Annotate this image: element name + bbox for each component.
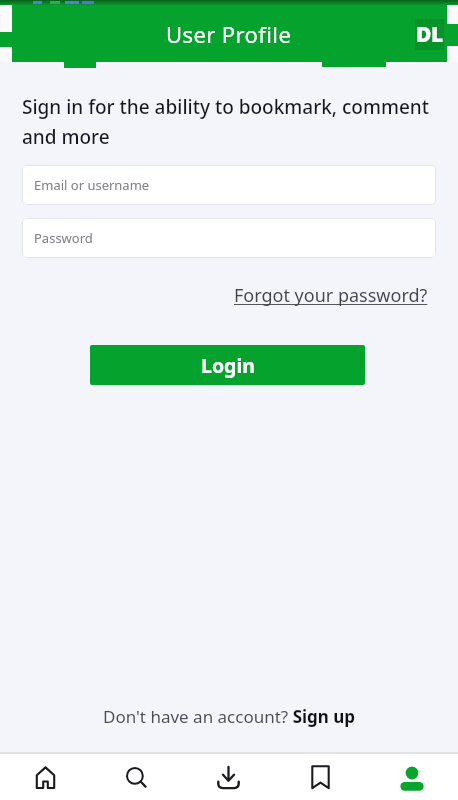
button[interactable]: Password [22, 218, 436, 258]
button[interactable] [0, 754, 91, 800]
button[interactable] [182, 754, 274, 800]
button[interactable]: DL [415, 19, 444, 50]
button[interactable]: Don't have an account? Sign up [0, 705, 458, 728]
staticText: Don't have an account? Sign up [103, 705, 356, 728]
button[interactable] [274, 754, 366, 800]
staticText: Sign in for the ability to bookmark, com… [22, 94, 430, 150]
staticText: Login [201, 352, 255, 379]
staticText: DL [416, 20, 443, 49]
button[interactable]: Email or username [22, 165, 436, 205]
button[interactable]: Login [90, 345, 365, 385]
button[interactable]: Forgot your password? [234, 283, 428, 308]
staticText: Password [34, 229, 93, 247]
button[interactable] [366, 754, 458, 800]
button[interactable] [91, 754, 182, 800]
staticText: User Profile [166, 19, 292, 49]
staticText: Email or username [34, 176, 150, 194]
